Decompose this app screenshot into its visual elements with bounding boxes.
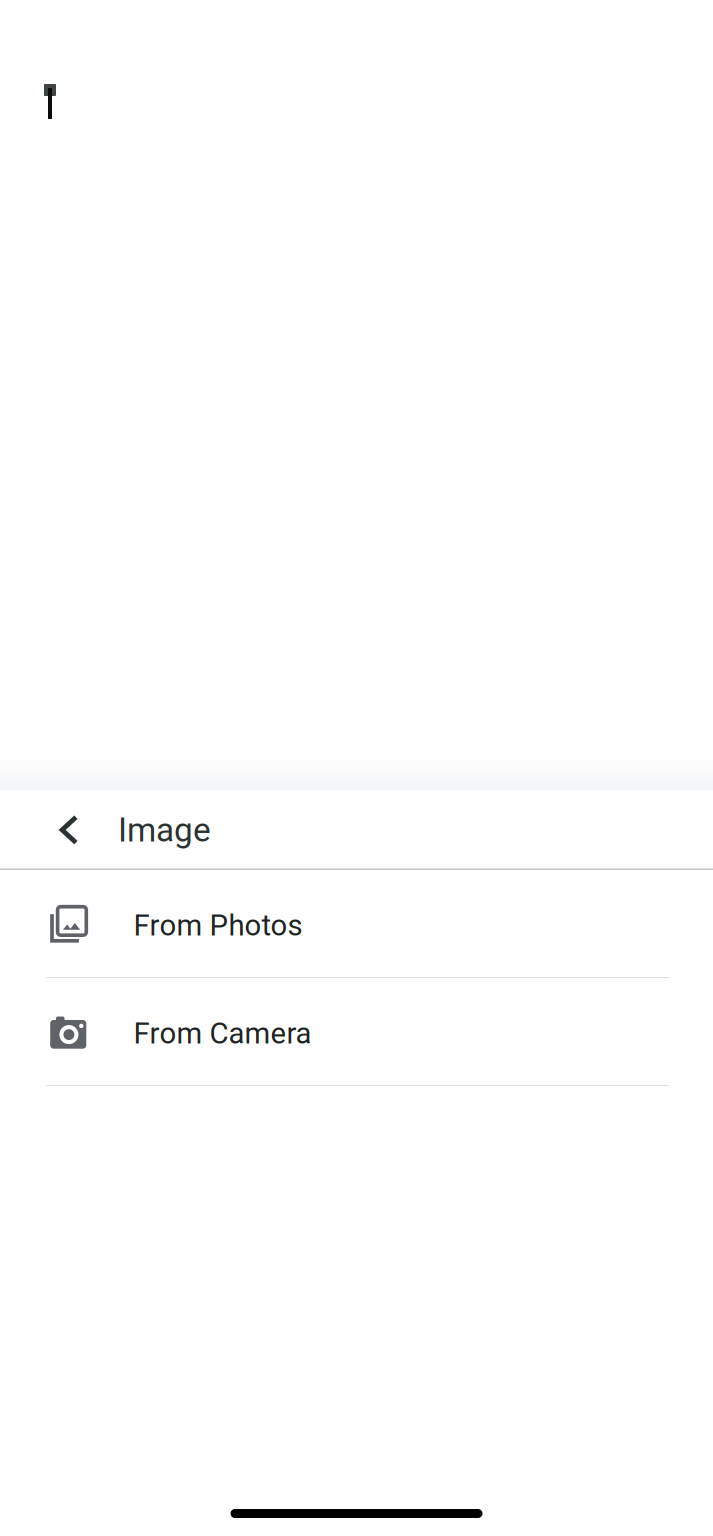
staticText: Image	[118, 811, 211, 850]
staticText: From Photos	[134, 908, 303, 943]
staticText: From Camera	[134, 1016, 312, 1051]
button[interactable]: Back	[38, 790, 133, 868]
button[interactable]: From Camera	[0, 978, 713, 1086]
button[interactable]: From Photos	[0, 870, 713, 978]
